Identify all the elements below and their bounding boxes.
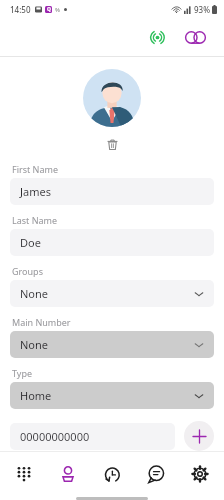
staticText: 14:50 [10, 4, 31, 15]
staticText: None [20, 286, 49, 301]
button[interactable]: Contact photo [83, 69, 141, 127]
staticText: Type [12, 367, 33, 379]
button[interactable]: Settings [180, 452, 220, 496]
staticText: Last Name [12, 214, 58, 226]
button[interactable]: Messages [136, 452, 176, 496]
button[interactable]: 00000000000 [10, 423, 175, 450]
button[interactable]: Broadcast [142, 22, 172, 52]
button[interactable]: Home [10, 382, 214, 409]
staticText: % [55, 6, 60, 14]
button[interactable]: Voicemail [180, 22, 210, 52]
staticText: Home [20, 388, 52, 403]
button[interactable]: Contacts [48, 452, 88, 496]
button[interactable]: None [10, 331, 214, 358]
button[interactable]: None [10, 280, 214, 307]
staticText: Groups [12, 265, 43, 277]
staticText: 00000000000 [20, 429, 90, 444]
button[interactable]: Delete photo [101, 133, 123, 155]
staticText: James [20, 184, 51, 199]
button[interactable]: Recents [92, 452, 132, 496]
staticText: Doe [20, 235, 41, 250]
staticText: None [20, 337, 49, 352]
staticText: Q [47, 6, 51, 13]
button[interactable]: James [10, 178, 214, 205]
button[interactable]: Dialpad [4, 452, 44, 496]
button[interactable]: Add number [184, 421, 214, 451]
button[interactable]: Doe [10, 229, 214, 256]
staticText: First Name [12, 163, 58, 175]
staticText: 93% [194, 4, 210, 15]
staticText: Main Number [12, 316, 71, 328]
